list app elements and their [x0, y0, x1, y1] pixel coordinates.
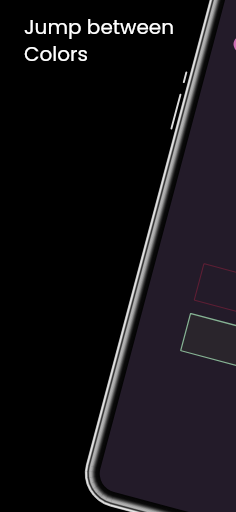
staticText: Jump between Colors — [24, 13, 175, 68]
